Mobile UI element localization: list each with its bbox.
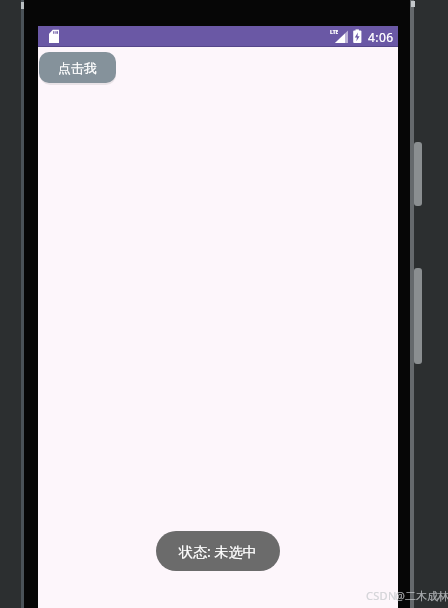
staticText: @二木成林 [395,588,448,603]
staticText: 点击我 [58,60,97,76]
staticText: 状态: 未选中 [179,542,257,561]
button[interactable]: 状态: 未选中 [156,531,280,571]
staticText: CSDN [366,588,397,603]
staticText: 4:06 [368,29,394,45]
button[interactable]: 点击我 [39,52,116,83]
staticText: LTE [330,29,339,36]
